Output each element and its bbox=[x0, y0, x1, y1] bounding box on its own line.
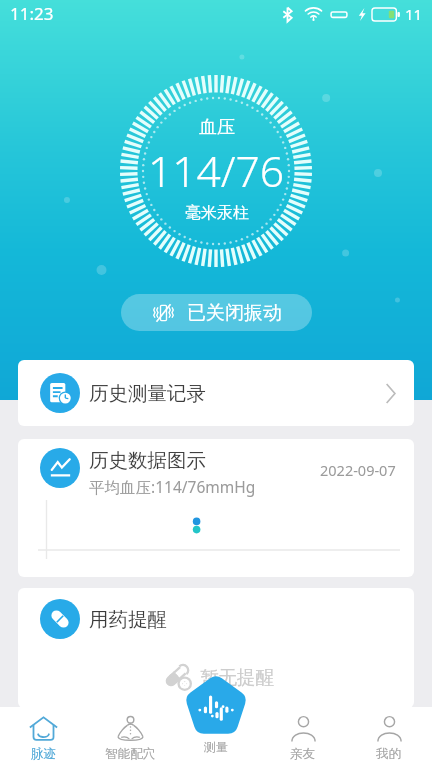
staticText: 智能配穴 bbox=[105, 746, 156, 762]
staticText: 亲友 bbox=[290, 746, 316, 762]
staticText: 毫米汞柱 bbox=[185, 203, 249, 223]
staticText: 暂无提醒 bbox=[200, 666, 274, 689]
staticText: 我的 bbox=[376, 746, 402, 762]
button[interactable]: 我的 bbox=[346, 707, 432, 768]
button[interactable]: 已关闭振动 bbox=[121, 294, 312, 331]
staticText: 平均血压:114/76mmHg bbox=[89, 476, 256, 497]
button[interactable]: 智能配穴 bbox=[87, 707, 174, 768]
staticText: 2022-09-07 bbox=[320, 460, 396, 480]
staticText: 测量 bbox=[204, 739, 228, 754]
staticText: 11 bbox=[405, 4, 423, 24]
button[interactable]: 测量 bbox=[183, 674, 249, 735]
staticText: 历史数据图示 bbox=[89, 448, 206, 473]
staticText: 血压 bbox=[199, 116, 235, 139]
staticText: 用药提醒 bbox=[89, 607, 167, 632]
staticText: 已关闭振动 bbox=[187, 301, 282, 325]
staticText: 脉迹 bbox=[31, 746, 57, 762]
button[interactable]: 历史数据图示 bbox=[18, 439, 414, 577]
button[interactable]: 亲友 bbox=[260, 707, 346, 768]
staticText: 114/76 bbox=[148, 142, 285, 200]
button[interactable]: 用药提醒 bbox=[18, 588, 414, 708]
button[interactable]: 历史测量记录 bbox=[18, 360, 414, 426]
button[interactable]: 脉迹 bbox=[0, 707, 87, 768]
staticText: 历史测量记录 bbox=[89, 381, 206, 406]
staticText: 11:23 bbox=[10, 2, 54, 25]
